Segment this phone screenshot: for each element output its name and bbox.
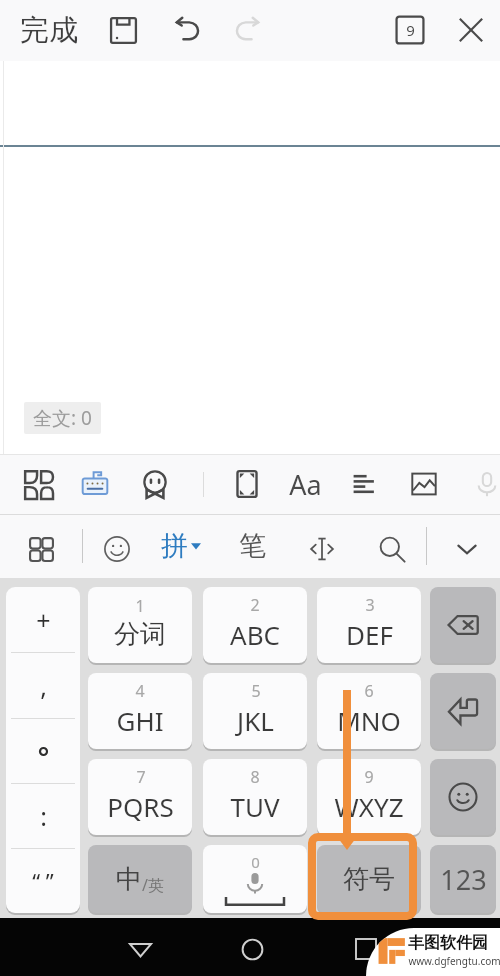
button[interactable]: 8 <box>203 759 307 835</box>
staticText: 完成 <box>20 12 78 49</box>
staticText: 8 <box>250 766 260 788</box>
staticText: 9 <box>406 20 415 40</box>
staticText: WXYZ <box>334 789 404 824</box>
staticText: GHI <box>116 703 164 738</box>
staticText: 3 <box>365 594 375 616</box>
staticText: 分词 <box>114 618 166 651</box>
staticText: 4 <box>135 680 145 702</box>
button[interactable]: Stickers <box>133 462 177 506</box>
staticText: 5 <box>251 680 261 702</box>
button[interactable]: 123 <box>430 845 496 913</box>
button[interactable]: 2 <box>203 587 307 663</box>
button[interactable]: 3 <box>317 587 421 663</box>
button[interactable] <box>6 719 80 783</box>
staticText: : <box>40 799 47 833</box>
staticText: 1 <box>135 595 145 617</box>
staticText: 0 <box>251 852 260 872</box>
button[interactable]: 6 <box>317 673 421 749</box>
button[interactable]: , <box>6 653 80 718</box>
staticText: 9 <box>364 766 374 788</box>
button[interactable]: Pages <box>388 8 432 52</box>
button[interactable]: 4 <box>88 673 192 749</box>
button[interactable]: Image <box>402 462 446 506</box>
staticText: 2 <box>250 594 260 616</box>
button[interactable]: Save <box>101 8 145 52</box>
staticText: 拼 <box>161 529 188 563</box>
staticText: DEF <box>346 617 393 652</box>
button[interactable] <box>430 673 496 749</box>
button[interactable]: Templates <box>16 462 60 506</box>
button[interactable]: Cursor <box>301 528 343 570</box>
button[interactable]: 完成 <box>14 8 84 53</box>
button[interactable]: Keyboard <box>73 462 117 506</box>
button[interactable]: Frame <box>225 462 269 506</box>
staticText: JKL <box>237 703 274 738</box>
button[interactable]: 中 <box>88 845 192 913</box>
staticText: TUV <box>230 789 280 824</box>
button[interactable]: “ ” <box>6 849 80 913</box>
button[interactable]: Emoji <box>96 528 138 570</box>
button[interactable]: Align <box>342 462 386 506</box>
button[interactable]: Recents <box>342 925 390 973</box>
button[interactable]: Font size <box>283 462 327 506</box>
staticText: 笔 <box>239 529 266 563</box>
button[interactable]: + <box>6 587 80 652</box>
button[interactable]: 符号 <box>317 845 421 913</box>
staticText: 6 <box>364 680 374 702</box>
staticText: 符号 <box>343 863 395 896</box>
staticText: + <box>36 603 51 637</box>
staticText: , <box>40 669 47 703</box>
staticText: 丰图软件园 <box>408 933 488 953</box>
button[interactable]: 拼 <box>161 526 201 566</box>
button[interactable]: Keyboard layouts <box>20 528 62 570</box>
staticText: MNO <box>337 703 401 738</box>
button[interactable]: 7 <box>88 759 192 835</box>
staticText: 全文: 0 <box>33 405 92 431</box>
staticText: /英 <box>142 874 164 896</box>
button[interactable] <box>430 587 496 663</box>
staticText: ABC <box>230 617 280 652</box>
button[interactable]: Undo <box>165 8 209 52</box>
staticText: Aa <box>289 466 322 503</box>
button[interactable] <box>430 759 496 835</box>
staticText: 中 <box>116 863 142 896</box>
staticText: www.dgfengtu.com <box>408 954 500 968</box>
staticText: “ ” <box>32 866 54 896</box>
button[interactable]: Redo <box>225 8 269 52</box>
button[interactable]: Hide keyboard <box>446 528 488 570</box>
button[interactable]: Back <box>116 925 164 973</box>
staticText: PQRS <box>107 789 174 824</box>
button[interactable]: Voice <box>465 462 500 506</box>
button[interactable]: 笔 <box>235 526 269 566</box>
button[interactable]: Home <box>228 925 276 973</box>
button[interactable]: 0 <box>203 845 307 913</box>
staticText: 123 <box>440 861 487 898</box>
button[interactable]: Search <box>371 528 413 570</box>
button[interactable]: 1 <box>88 587 192 663</box>
button[interactable]: : <box>6 784 80 848</box>
button[interactable]: 9 <box>317 759 421 835</box>
button[interactable]: Close <box>449 8 493 52</box>
button[interactable]: 5 <box>203 673 307 749</box>
staticText: 7 <box>136 766 146 788</box>
